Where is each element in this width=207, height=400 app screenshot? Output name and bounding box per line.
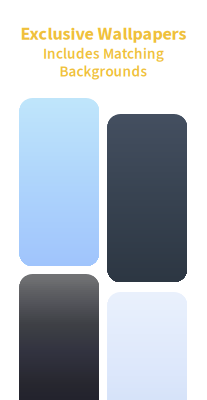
button[interactable]: Sky Blue wallpaper (19, 98, 99, 266)
staticText: Backgrounds (59, 61, 147, 83)
button[interactable]: Charcoal wallpaper (19, 274, 99, 400)
staticText: Includes Matching (43, 43, 164, 65)
button[interactable]: Pale Blue wallpaper (107, 292, 187, 400)
staticText: Exclusive Wallpapers (20, 21, 186, 47)
button[interactable]: Slate wallpaper (107, 114, 187, 282)
